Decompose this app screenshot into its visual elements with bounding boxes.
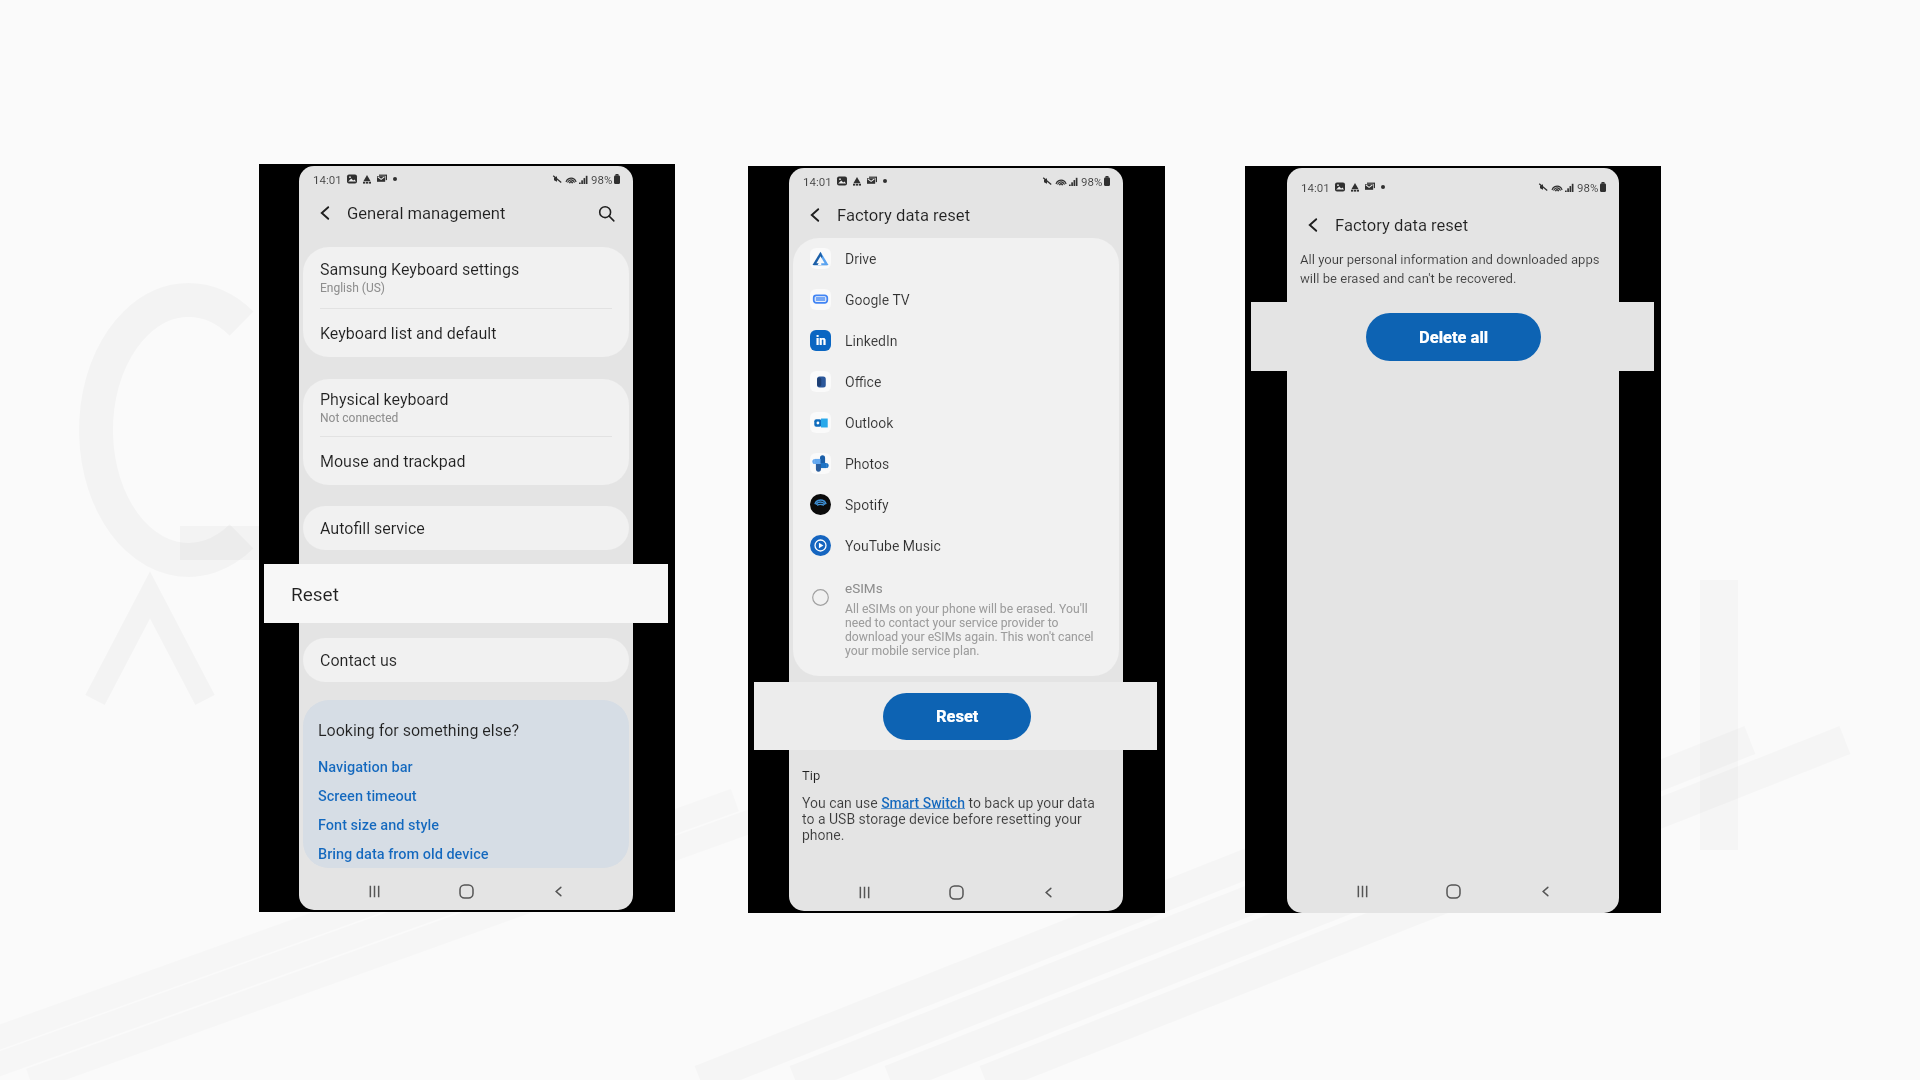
- button[interactable]: Home: [449, 875, 483, 907]
- staticText: Autofill service: [320, 519, 425, 538]
- staticText: Factory data reset: [837, 206, 971, 225]
- button[interactable]: YouTube Music: [793, 525, 1119, 566]
- button[interactable]: Mouse and trackpad: [303, 437, 629, 485]
- staticText: in: [816, 334, 826, 348]
- staticText: 14:01: [1301, 181, 1330, 194]
- staticText: Contact us: [320, 651, 397, 670]
- button[interactable]: Font size and style: [318, 811, 614, 840]
- button[interactable]: Keyboard list and default: [303, 309, 629, 357]
- button[interactable]: eSIMs: [793, 566, 1119, 676]
- staticText: Not connected: [320, 411, 399, 425]
- staticText: Office: [845, 374, 882, 390]
- button[interactable]: Physical keyboard: [303, 379, 629, 436]
- button[interactable]: Photos: [793, 443, 1119, 484]
- button[interactable]: Navigation bar: [318, 753, 614, 782]
- staticText: eSIMs: [845, 580, 883, 596]
- button[interactable]: Home: [1436, 875, 1470, 907]
- button[interactable]: Delete all: [1366, 313, 1541, 361]
- staticText: Photos: [845, 456, 890, 472]
- staticText: Factory data reset: [1335, 216, 1469, 235]
- staticText: Looking for something else?: [318, 721, 520, 740]
- button[interactable]: Outlook: [793, 402, 1119, 443]
- staticText: Reset: [320, 585, 361, 604]
- button[interactable]: Bring data from old device: [318, 840, 614, 868]
- staticText: Font size and style: [318, 817, 439, 834]
- button[interactable]: Home: [939, 876, 973, 908]
- staticText: Google TV: [845, 292, 910, 308]
- staticText: Samsung Keyboard settings: [320, 260, 520, 279]
- staticText: 98%: [1577, 181, 1599, 194]
- staticText: Mouse and trackpad: [320, 452, 466, 471]
- staticText: Tip: [802, 768, 821, 783]
- staticText: 98%: [591, 173, 613, 186]
- button[interactable]: Contact us: [303, 638, 629, 682]
- staticText: 14:01: [803, 175, 832, 188]
- staticText: Keyboard list and default: [320, 324, 497, 343]
- staticText: 98%: [1081, 175, 1103, 188]
- button[interactable]: Samsung Keyboard settings: [303, 247, 629, 308]
- button[interactable]: Back: [1300, 212, 1326, 238]
- button[interactable]: Back: [1031, 876, 1065, 908]
- staticText: You can use Smart Switch to back up your…: [802, 795, 1101, 843]
- button[interactable]: Search: [593, 200, 619, 226]
- staticText: Physical keyboard: [320, 390, 449, 409]
- staticText: Spotify: [845, 497, 889, 513]
- staticText: All eSIMs on your phone will be erased. …: [845, 602, 1114, 658]
- button[interactable]: Screen timeout: [318, 782, 614, 811]
- staticText: All your personal information and downlo…: [1300, 252, 1605, 286]
- staticText: LinkedIn: [845, 333, 898, 349]
- staticText: YouTube Music: [845, 538, 941, 554]
- button[interactable]: Recent apps: [357, 875, 391, 907]
- button[interactable]: Drive: [793, 238, 1119, 279]
- button[interactable]: Autofill service: [303, 506, 629, 550]
- staticText: 14:01: [313, 173, 342, 186]
- button[interactable]: Reset: [883, 693, 1031, 740]
- button[interactable]: Spotify: [793, 484, 1119, 525]
- staticText: Reset: [936, 707, 979, 726]
- button[interactable]: Back: [1528, 875, 1562, 907]
- staticText: English (US): [320, 281, 385, 295]
- staticText: Outlook: [845, 415, 894, 431]
- staticText: Reset: [291, 583, 339, 605]
- staticText: Bring data from old device: [318, 846, 489, 863]
- button[interactable]: Google TV: [793, 279, 1119, 320]
- staticText: Delete all: [1419, 328, 1489, 347]
- button[interactable]: Back: [802, 202, 828, 228]
- staticText: Screen timeout: [318, 788, 417, 805]
- button[interactable]: Recent apps: [1345, 875, 1379, 907]
- button[interactable]: in: [793, 320, 1119, 361]
- button[interactable]: Reset: [303, 572, 629, 616]
- button[interactable]: Office: [793, 361, 1119, 402]
- staticText: Navigation bar: [318, 759, 413, 776]
- button[interactable]: Back: [541, 875, 575, 907]
- button[interactable]: Recent apps: [847, 876, 881, 908]
- button[interactable]: Reset: [291, 564, 668, 623]
- staticText: General management: [347, 204, 506, 223]
- staticText: Drive: [845, 251, 877, 267]
- button[interactable]: Back: [312, 200, 338, 226]
